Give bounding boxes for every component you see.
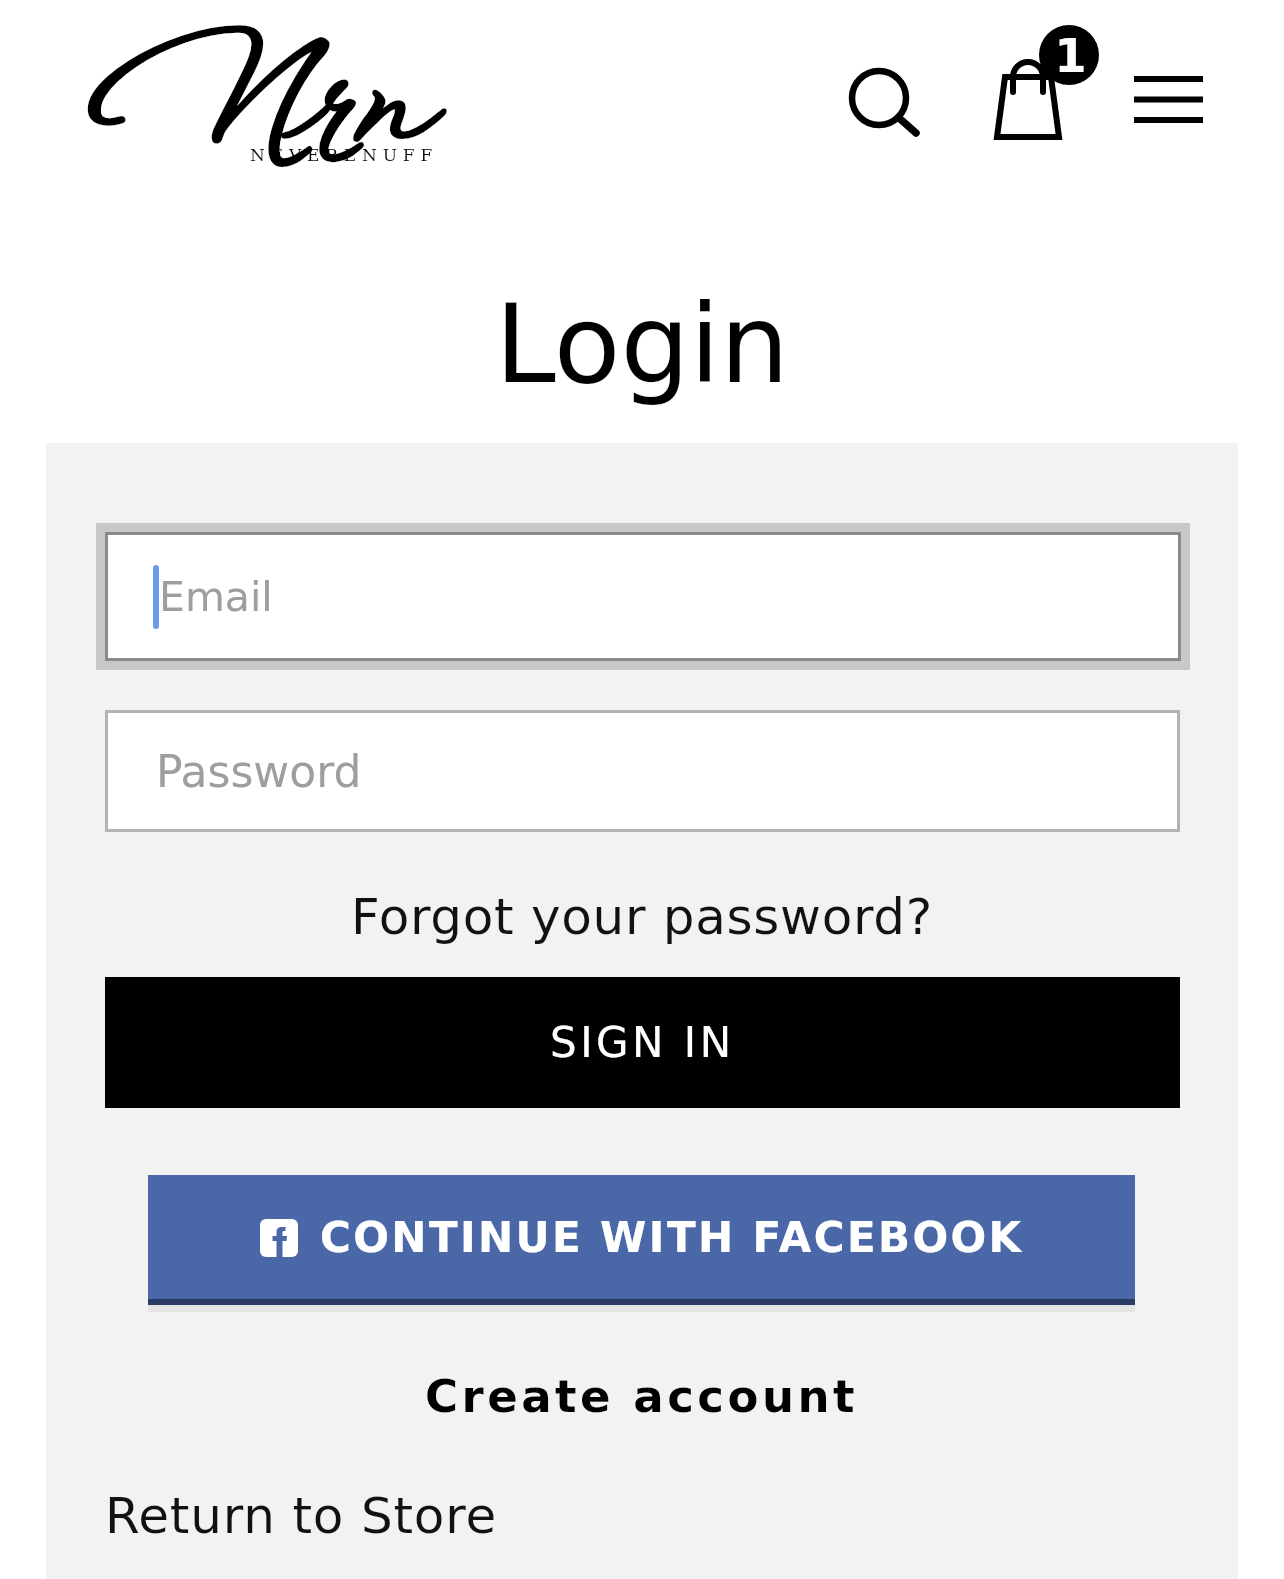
button[interactable] [1130,70,1208,130]
button[interactable]: CONTINUE WITH FACEBOOK [148,1175,1135,1312]
staticText: Create account [425,1370,859,1422]
staticText: Return to Store [105,1487,498,1545]
staticText: Email [159,573,273,621]
staticText: Nrn [88,12,588,208]
button[interactable] [985,25,1105,145]
button[interactable]: Create account [425,1370,859,1422]
staticText: CONTINUE WITH FACEBOOK [320,1213,1024,1262]
staticText: Forgot your password? [351,888,934,946]
staticText: Nrn [88,12,588,208]
staticText: Login [0,281,1284,408]
button[interactable]: Email [96,523,1190,670]
button[interactable]: Password [105,710,1180,832]
staticText: Password [156,746,362,797]
staticText: SIGN IN [550,1018,735,1067]
button[interactable] [845,62,921,138]
button[interactable]: Return to Store [105,1487,498,1545]
staticText: NEVERENUFF [250,145,438,165]
button[interactable]: Forgot your password? [351,888,934,946]
staticText: 1 [1054,29,1084,83]
button[interactable]: SIGN IN [105,977,1180,1108]
